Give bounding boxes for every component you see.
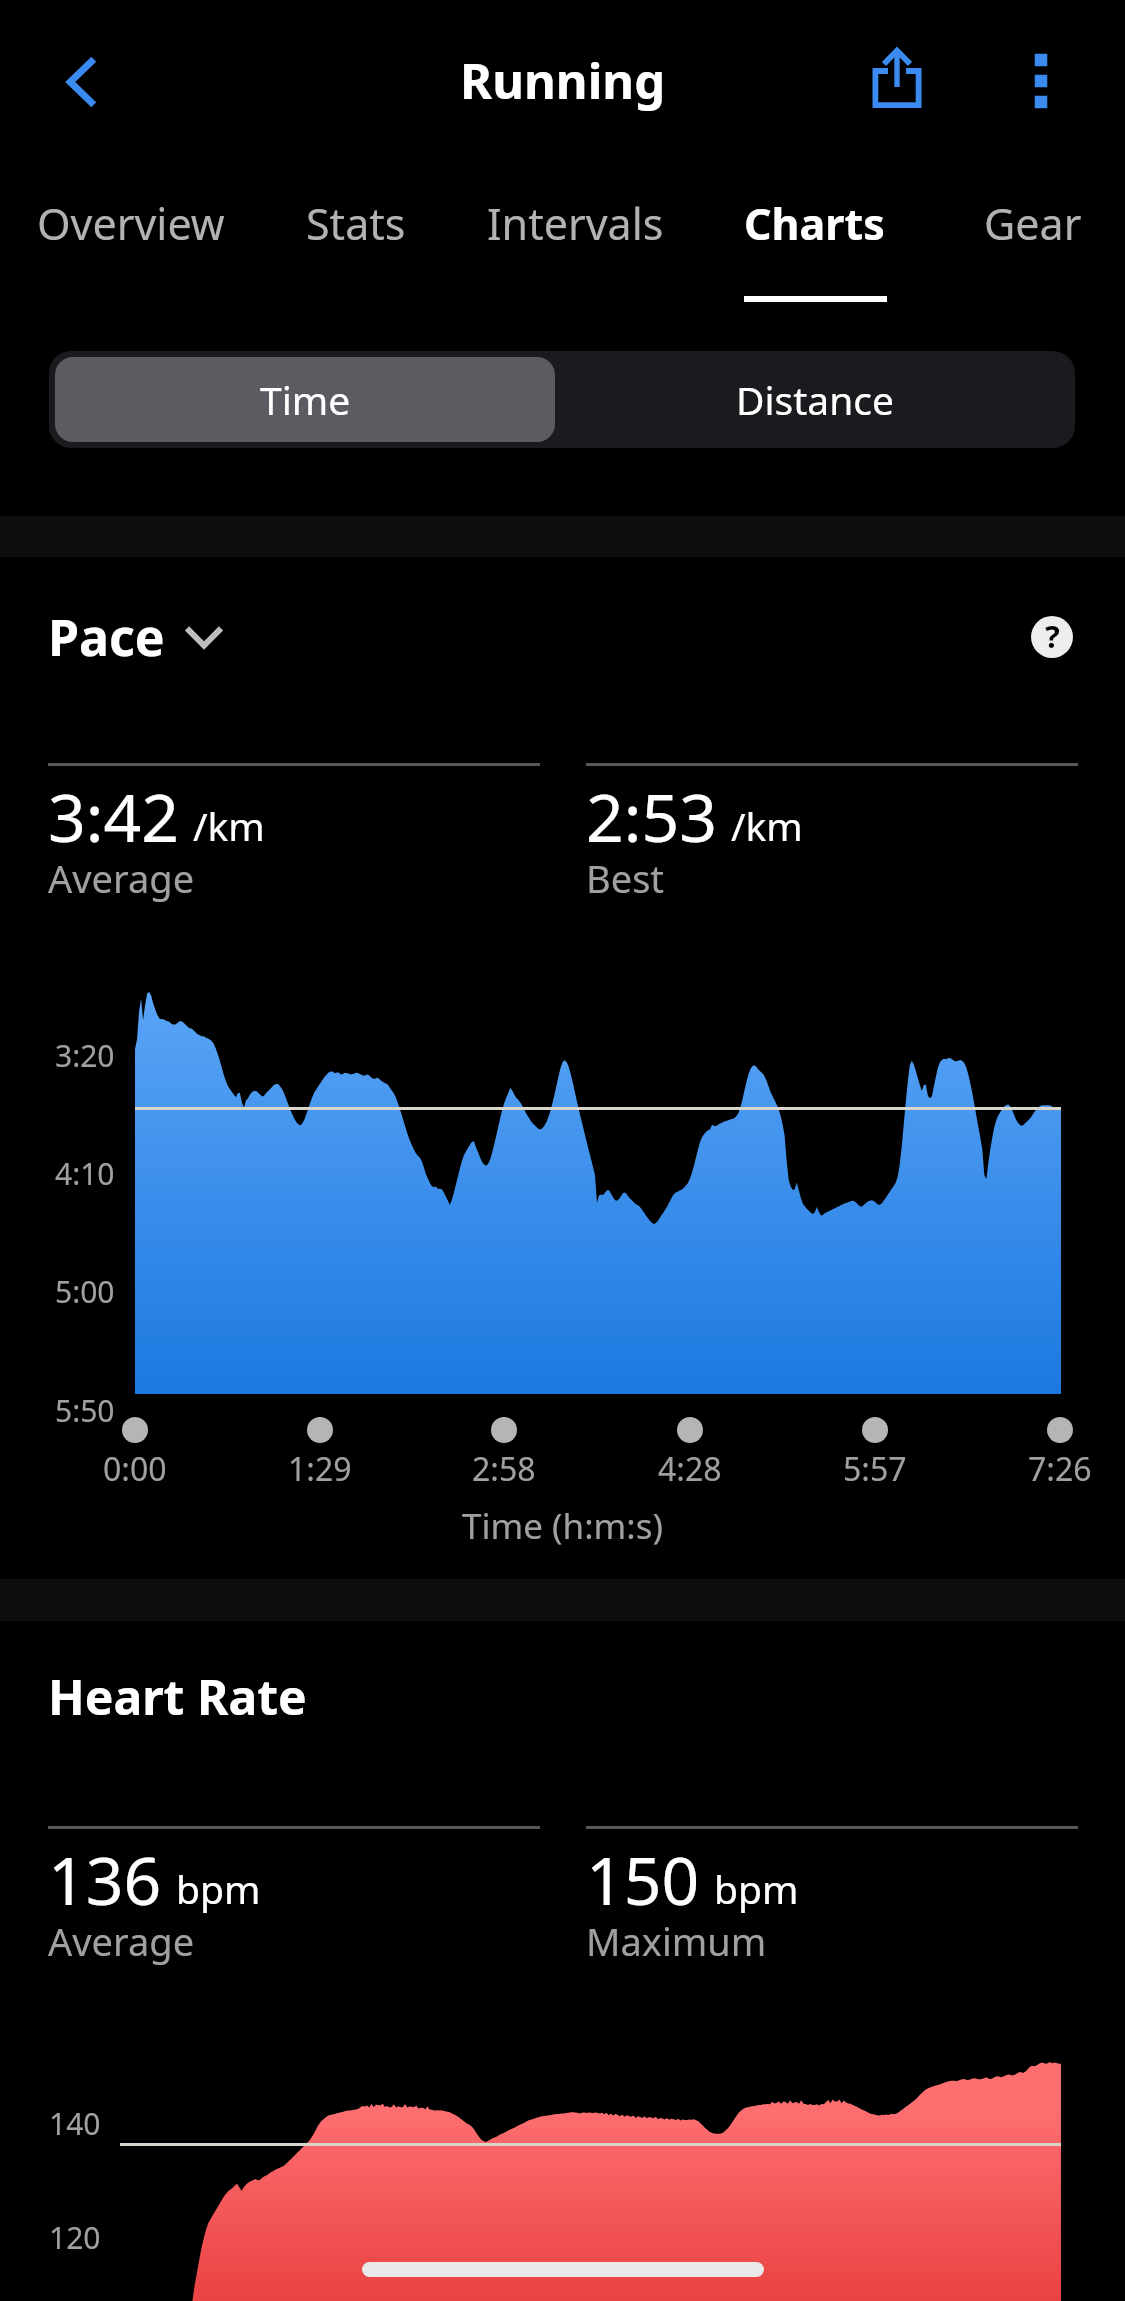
button[interactable]: Overview — [0, 160, 266, 300]
staticText: Intervals — [487, 194, 664, 253]
staticText: 150 — [586, 1834, 700, 1924]
button[interactable]: Charts — [700, 160, 935, 300]
staticText: 4:10 — [55, 1153, 115, 1194]
staticText: bpm — [176, 1862, 261, 1915]
staticText: Gear — [984, 194, 1082, 253]
staticText: 5:00 — [55, 1271, 115, 1312]
staticText: Charts — [744, 194, 885, 253]
staticText: 1:29 — [288, 1447, 352, 1491]
staticText: 3:42 — [48, 771, 179, 861]
staticText: 140 — [49, 2103, 101, 2144]
staticText: /km — [731, 799, 803, 852]
staticText: 3:20 — [55, 1035, 115, 1076]
button[interactable]: Time — [55, 357, 555, 442]
staticText: 5:50 — [55, 1390, 115, 1431]
staticText: Average — [48, 1915, 195, 1967]
staticText: 4:28 — [658, 1447, 722, 1491]
staticText: Best — [586, 852, 665, 904]
staticText: 2:53 — [586, 771, 717, 861]
staticText: Time (h:m:s) — [462, 1502, 663, 1550]
staticText: 5:57 — [843, 1447, 907, 1491]
staticText: Maximum — [586, 1915, 767, 1967]
staticText: Distance — [736, 373, 894, 426]
staticText: Heart Rate — [48, 1664, 307, 1729]
button[interactable]: Help — [1012, 597, 1092, 677]
staticText: 0:00 — [103, 1447, 167, 1491]
button[interactable]: More options — [993, 33, 1089, 129]
staticText: Overview — [37, 194, 225, 253]
staticText: 2:58 — [472, 1447, 536, 1491]
button[interactable]: Share — [849, 30, 945, 126]
staticText: 136 — [48, 1834, 162, 1924]
button[interactable]: Intervals — [447, 160, 700, 300]
button[interactable]: Gear — [935, 160, 1125, 300]
staticText: Running — [460, 47, 666, 114]
staticText: bpm — [714, 1862, 799, 1915]
staticText: Stats — [306, 194, 406, 253]
staticText: Average — [48, 852, 195, 904]
staticText: Pace — [48, 603, 165, 671]
button[interactable]: Back — [34, 34, 130, 130]
staticText: Time — [260, 373, 351, 426]
staticText: /km — [193, 799, 265, 852]
button[interactable]: Stats — [266, 160, 447, 300]
staticText: 120 — [49, 2217, 101, 2258]
button[interactable]: Distance — [561, 357, 1069, 442]
button[interactable]: Pace — [34, 596, 264, 678]
staticText: ? — [1045, 616, 1060, 657]
staticText: 7:26 — [1028, 1447, 1092, 1491]
